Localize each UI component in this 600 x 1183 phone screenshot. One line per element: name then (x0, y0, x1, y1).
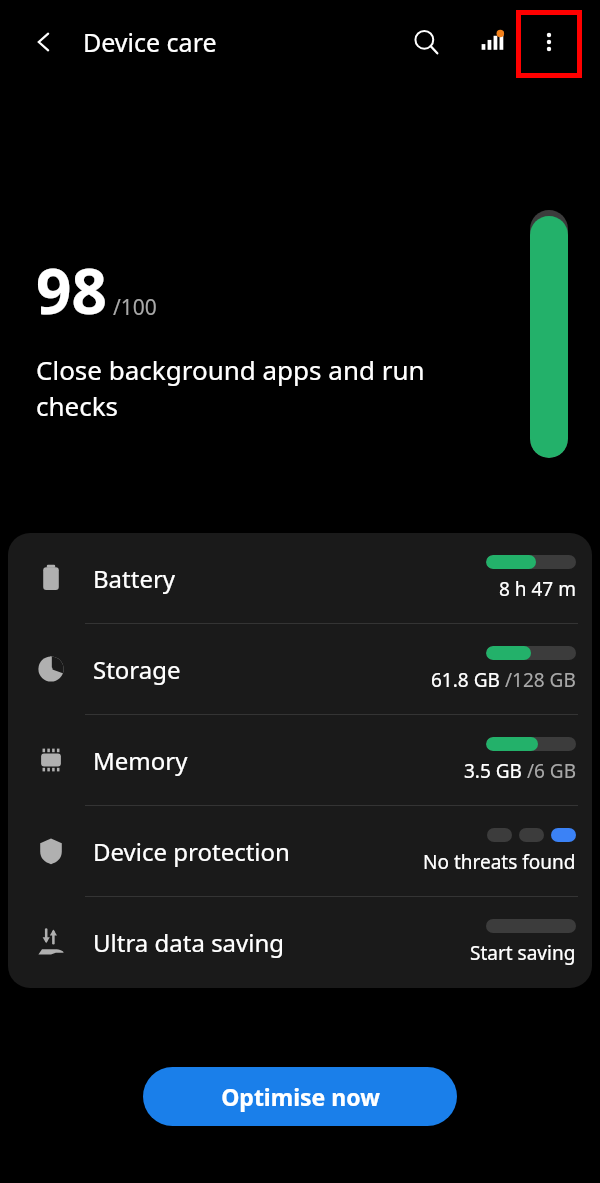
button[interactable]: Memory (8, 715, 592, 805)
button[interactable]: Storage (8, 624, 592, 714)
staticText: Device protection (93, 835, 290, 868)
button[interactable]: Battery (8, 533, 592, 623)
staticText: 3.5 GB (464, 758, 522, 784)
button[interactable]: Back (22, 20, 66, 64)
staticText: No threats found (423, 849, 576, 875)
staticText: Ultra data saving (93, 926, 285, 959)
staticText: Device care (83, 25, 217, 59)
staticText: Memory (93, 744, 188, 777)
staticText: /128 GB (500, 667, 576, 693)
button[interactable]: Device protection (8, 806, 592, 896)
staticText: 98 (36, 248, 107, 332)
staticText: Close background apps and run checks (36, 352, 486, 424)
staticText: /6 GB (522, 758, 576, 784)
staticText: 8 h 47 m (499, 576, 576, 602)
button[interactable]: Search (402, 18, 450, 66)
button[interactable]: Ultra data saving (8, 897, 592, 987)
staticText: Battery (93, 562, 176, 595)
staticText: /100 (113, 293, 157, 322)
staticText: Optimise now (221, 1081, 380, 1112)
button[interactable]: Network status (468, 18, 516, 66)
button[interactable]: More options (525, 18, 573, 66)
staticText: Storage (93, 653, 181, 686)
button[interactable]: Optimise now (143, 1067, 457, 1126)
staticText: 61.8 GB (431, 667, 500, 693)
staticText: Start saving (470, 940, 576, 966)
